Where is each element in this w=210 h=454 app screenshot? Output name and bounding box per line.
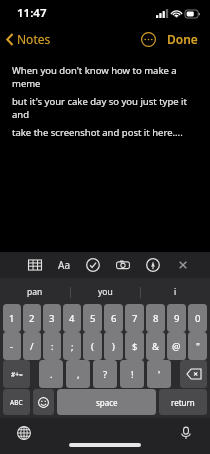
- button[interactable]: ABC: [3, 389, 30, 415]
- button[interactable]: -: [3, 332, 21, 360]
- staticText: ,: [77, 368, 80, 381]
- staticText: 9: [174, 312, 180, 325]
- button[interactable]: Change keyboard language: [12, 421, 36, 445]
- button[interactable]: 9: [167, 304, 186, 332]
- button[interactable]: !: [120, 360, 144, 388]
- staticText: pan: [27, 286, 43, 298]
- button[interactable]: Table: [22, 252, 48, 278]
- button[interactable]: 5: [83, 304, 102, 332]
- button[interactable]: /: [23, 332, 41, 360]
- button[interactable]: you: [71, 280, 140, 304]
- button[interactable]: More options: [137, 28, 159, 50]
- button[interactable]: Close keyboard: [170, 252, 196, 278]
- button[interactable]: Done: [163, 28, 202, 50]
- button[interactable]: &: [146, 332, 165, 360]
- button[interactable]: .: [39, 360, 63, 388]
- staticText: ": [196, 340, 200, 353]
- staticText: ABC: [10, 398, 23, 407]
- button[interactable]: ': [147, 360, 171, 388]
- staticText: 6: [111, 312, 117, 325]
- button[interactable]: Notes: [0, 27, 59, 51]
- staticText: space: [96, 397, 118, 408]
- staticText: ': [158, 368, 161, 381]
- button[interactable]: 3: [43, 304, 61, 332]
- button[interactable]: pan: [0, 280, 70, 304]
- button[interactable]: 4: [63, 304, 81, 332]
- button[interactable]: $: [125, 332, 144, 360]
- staticText: i: [174, 286, 177, 298]
- staticText: 4: [69, 312, 75, 325]
- staticText: 1: [9, 312, 15, 325]
- button[interactable]: space: [57, 389, 156, 415]
- button[interactable]: ): [104, 332, 123, 360]
- staticText: /: [30, 340, 34, 353]
- button[interactable]: 6: [104, 304, 123, 332]
- staticText: #+=: [11, 370, 23, 379]
- staticText: take the screenshot and post it here....: [12, 126, 183, 139]
- button[interactable]: 2: [23, 304, 41, 332]
- staticText: 11:47: [17, 5, 47, 21]
- button[interactable]: ": [188, 332, 207, 360]
- staticText: $: [132, 340, 138, 353]
- staticText: ?: [103, 368, 108, 381]
- button[interactable]: #+=: [3, 360, 30, 388]
- button[interactable]: 0: [188, 304, 207, 332]
- staticText: .: [50, 368, 53, 381]
- staticText: 0: [195, 312, 201, 325]
- staticText: :: [51, 340, 54, 353]
- staticText: Done: [167, 31, 198, 47]
- button[interactable]: ,: [66, 360, 90, 388]
- button[interactable]: 7: [125, 304, 144, 332]
- button[interactable]: (: [83, 332, 102, 360]
- staticText: 2: [29, 312, 35, 325]
- staticText: &: [152, 340, 159, 353]
- staticText: Notes: [17, 31, 51, 47]
- staticText: 8: [153, 312, 159, 325]
- button[interactable]: Camera: [110, 252, 136, 278]
- button[interactable]: ?: [93, 360, 117, 388]
- staticText: @: [172, 340, 181, 353]
- staticText: ): [112, 340, 115, 353]
- staticText: !: [131, 368, 134, 381]
- button[interactable]: Text format: [51, 252, 77, 278]
- staticText: Aa: [58, 258, 70, 272]
- staticText: 3: [49, 312, 55, 325]
- button[interactable]: :: [43, 332, 61, 360]
- button[interactable]: Emoji: [33, 389, 54, 415]
- staticText: -: [10, 340, 14, 353]
- button[interactable]: Checklist: [80, 252, 106, 278]
- staticText: you: [98, 286, 113, 298]
- button[interactable]: i: [141, 280, 210, 304]
- staticText: return: [171, 397, 195, 408]
- button[interactable]: ;: [63, 332, 81, 360]
- staticText: When you don't know how to make a meme: [12, 64, 200, 90]
- staticText: ;: [71, 340, 74, 353]
- button[interactable]: 1: [3, 304, 21, 332]
- staticText: 5: [90, 312, 96, 325]
- staticText: but it's your cake day so you just type …: [12, 95, 200, 121]
- button[interactable]: Markup: [140, 252, 166, 278]
- staticText: 7: [132, 312, 138, 325]
- staticText: (: [91, 340, 94, 353]
- button[interactable]: 8: [146, 304, 165, 332]
- button[interactable]: Dictation: [174, 421, 198, 445]
- button[interactable]: @: [167, 332, 186, 360]
- button[interactable]: Delete: [180, 360, 207, 388]
- button[interactable]: return: [159, 389, 207, 415]
